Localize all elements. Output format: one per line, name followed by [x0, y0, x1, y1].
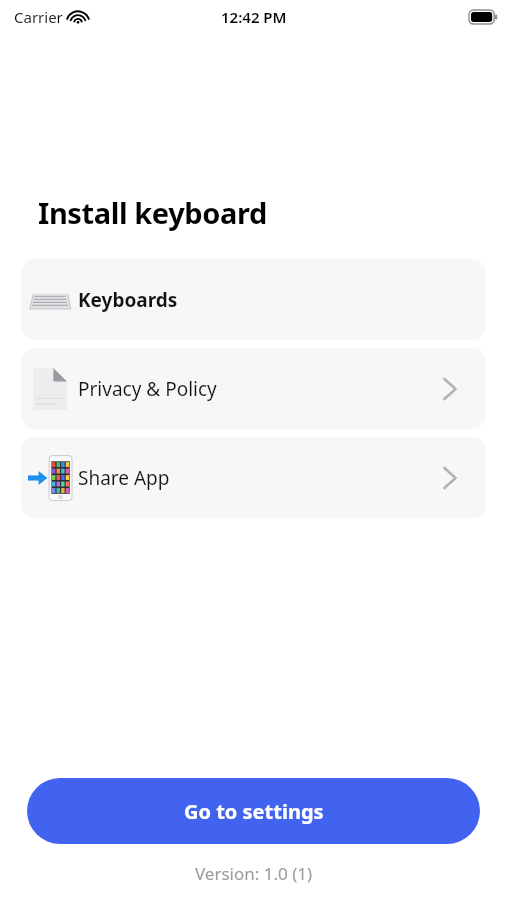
staticText: Carrier	[14, 7, 63, 27]
staticText: Share App	[78, 465, 170, 491]
button[interactable]: Go to settings	[27, 778, 480, 844]
staticText: Install keyboard	[38, 193, 267, 232]
button[interactable]: Keyboards	[21, 259, 486, 340]
staticText: Privacy & Policy	[78, 376, 217, 402]
button[interactable]: Privacy & Policy	[21, 348, 486, 429]
button[interactable]: Share App	[21, 437, 486, 518]
staticText: Keyboards	[78, 287, 178, 313]
staticText: Version: 1.0 (1)	[0, 862, 507, 885]
staticText: Go to settings	[184, 798, 324, 825]
staticText: 12:42 PM	[221, 7, 287, 27]
